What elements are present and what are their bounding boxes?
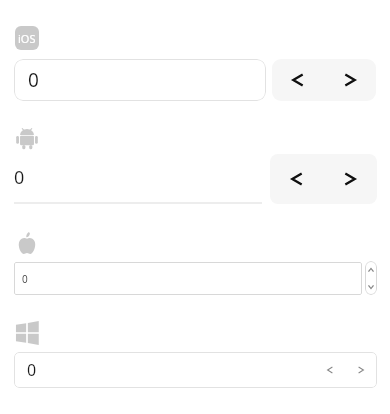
button[interactable]: Decrement (270, 154, 323, 204)
button[interactable]: 0 (14, 154, 262, 204)
staticText: 0 (28, 67, 39, 93)
staticText: 0 (14, 165, 25, 190)
button[interactable]: 0 (14, 59, 266, 101)
button[interactable]: Decrement (315, 352, 345, 388)
button[interactable]: Increment (324, 59, 376, 101)
button[interactable]: 0 (14, 262, 362, 295)
button[interactable]: Decrement (272, 59, 324, 101)
button[interactable]: Increment (323, 154, 377, 204)
button[interactable]: Increment (365, 261, 377, 278)
staticText: 0 (22, 272, 28, 286)
button[interactable]: 0 (14, 352, 377, 388)
button[interactable]: Increment (345, 352, 377, 388)
staticText: 0 (27, 359, 37, 381)
button[interactable]: Decrement (365, 278, 377, 295)
staticText: iOS (18, 31, 36, 46)
